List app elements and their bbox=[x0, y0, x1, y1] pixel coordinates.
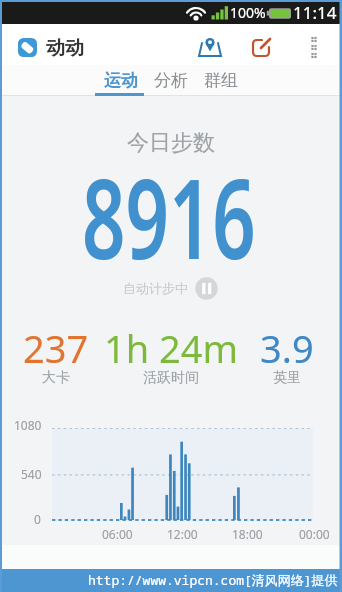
staticText: 动动 bbox=[46, 36, 84, 60]
button[interactable]: 群组 bbox=[196, 65, 246, 96]
staticText: 3.9 bbox=[260, 322, 314, 374]
staticText: 今日步数 bbox=[127, 129, 215, 157]
staticText: 18:00 bbox=[232, 526, 263, 542]
staticText: 100% bbox=[230, 3, 266, 22]
button[interactable] bbox=[196, 37, 226, 61]
staticText: 活跃时间 bbox=[143, 369, 199, 387]
staticText: 英里 bbox=[273, 369, 301, 387]
staticText: 1080 bbox=[14, 417, 42, 433]
staticText: 11:14 bbox=[293, 1, 337, 24]
button[interactable] bbox=[195, 277, 218, 300]
button[interactable]: 分析 bbox=[146, 65, 196, 96]
staticText: 0 bbox=[34, 511, 41, 527]
button[interactable]: http://www.vipcn.com[清风网络]提供 bbox=[0, 569, 342, 592]
staticText: 00:00 bbox=[299, 526, 330, 542]
staticText: 大卡 bbox=[42, 369, 70, 387]
button[interactable] bbox=[18, 38, 37, 57]
staticText: 1h 24m bbox=[104, 322, 239, 374]
staticText: 8916 bbox=[82, 141, 256, 291]
staticText: 群组 bbox=[204, 70, 238, 91]
button[interactable]: 运动 bbox=[96, 65, 146, 96]
staticText: 237 bbox=[23, 322, 89, 374]
button[interactable] bbox=[250, 37, 276, 59]
staticText: 06:00 bbox=[102, 526, 133, 542]
staticText: 自动计步中 bbox=[123, 280, 188, 296]
button[interactable] bbox=[303, 30, 327, 60]
staticText: 12:00 bbox=[167, 526, 198, 542]
staticText: 运动 bbox=[104, 70, 138, 91]
staticText: 分析 bbox=[154, 70, 188, 91]
staticText: http://www.vipcn.com[清风网络]提供 bbox=[88, 571, 338, 589]
staticText: 540 bbox=[21, 466, 42, 482]
